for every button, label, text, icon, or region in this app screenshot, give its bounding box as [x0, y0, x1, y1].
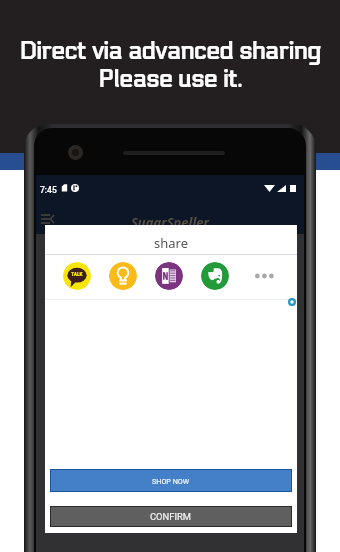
staticText: CONFIRM: [150, 511, 192, 522]
staticText: SugarSpeller: [36, 213, 304, 231]
button[interactable]: Share target: [201, 262, 229, 290]
button[interactable]: CONFIRM: [51, 507, 291, 526]
staticText: Direct via advanced sharing Please use i…: [0, 37, 340, 93]
button[interactable]: Share via KakaoTalk: [63, 262, 91, 290]
staticText: share: [45, 234, 297, 252]
button[interactable]: Share target: [109, 262, 137, 290]
button[interactable]: Open navigation drawer: [38, 208, 62, 232]
staticText: SHOP NOW: [152, 477, 190, 485]
button[interactable]: SHOP NOW: [51, 470, 291, 491]
staticText: TALK: [71, 271, 83, 277]
staticText: 7:45: [40, 185, 57, 195]
button[interactable]: Share target: [155, 262, 183, 290]
button[interactable]: More share targets: [243, 262, 289, 290]
